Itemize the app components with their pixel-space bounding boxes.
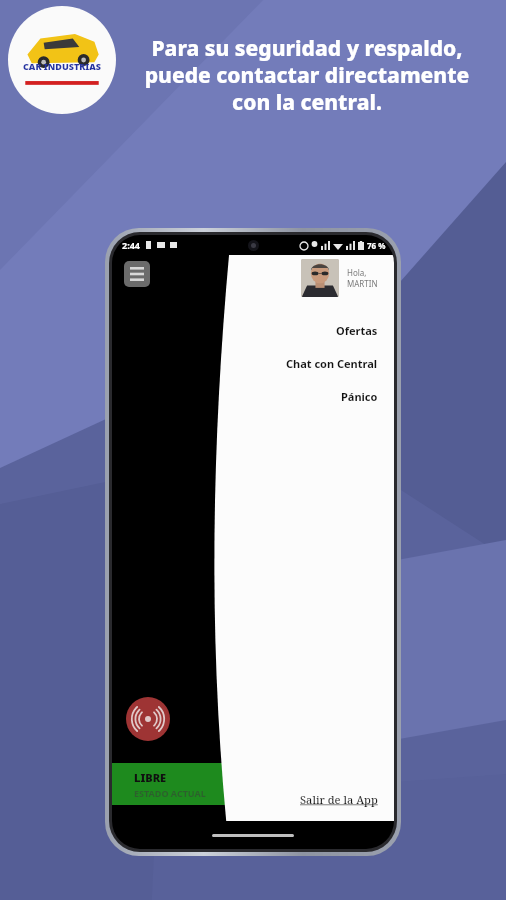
staticText: MARTIN bbox=[347, 278, 378, 289]
button[interactable]: Abrir menú bbox=[124, 261, 150, 287]
staticText: Pánico bbox=[341, 389, 378, 404]
button[interactable]: Emitir señal bbox=[126, 697, 170, 741]
button[interactable]: Pánico bbox=[112, 389, 394, 404]
staticText: 2:44 bbox=[122, 239, 140, 251]
staticText: Ofertas bbox=[336, 323, 378, 338]
staticText: Hola, bbox=[347, 267, 367, 278]
button[interactable]: LIBRE bbox=[112, 763, 292, 805]
staticText: ESTADO ACTUAL bbox=[134, 787, 206, 799]
button[interactable]: Hola, bbox=[112, 259, 378, 297]
staticText: Chat con Central bbox=[286, 356, 378, 371]
button[interactable]: Chat con Central bbox=[112, 356, 394, 371]
button[interactable]: Ofertas bbox=[112, 323, 394, 338]
button[interactable]: Salir de la App bbox=[112, 792, 394, 821]
staticText: 76 % bbox=[367, 240, 386, 251]
staticText: Salir de la App bbox=[300, 792, 378, 807]
staticText: CAR INDUSTRIAS bbox=[8, 60, 116, 72]
staticText: Para su seguridad y respaldo, puede cont… bbox=[130, 34, 484, 116]
staticText: LIBRE bbox=[134, 770, 167, 785]
